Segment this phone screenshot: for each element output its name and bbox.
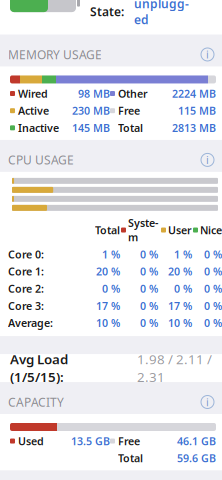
staticText: 230 MB — [72, 104, 110, 118]
staticText: 115 MB — [178, 104, 216, 118]
staticText: 20 % — [96, 264, 120, 279]
staticText: 0 % — [204, 247, 222, 261]
staticText: unplugged — [134, 0, 189, 27]
staticText: Active — [18, 104, 49, 118]
staticText: 0 % — [204, 299, 222, 313]
staticText: State: — [90, 4, 124, 19]
staticText: User — [168, 223, 192, 237]
staticText: 0 % — [140, 264, 158, 279]
staticText: Avg Load (1/5/15): — [10, 350, 68, 386]
staticText: Total — [118, 121, 143, 135]
staticText: Core 2: — [8, 281, 44, 296]
staticText: 145 MB — [72, 121, 110, 135]
staticText: Other — [118, 86, 148, 101]
staticText: 0 % — [140, 281, 158, 296]
staticText: 10 % — [168, 316, 192, 330]
staticText: i — [206, 153, 209, 167]
staticText: MEMORY USAGE — [8, 46, 102, 62]
staticText: 0 % — [174, 281, 192, 296]
staticText: Free — [118, 104, 140, 118]
staticText: CPU USAGE — [8, 152, 74, 168]
staticText: 46.1 GB — [177, 434, 216, 448]
staticText: Wired — [18, 86, 48, 101]
staticText: 0 % — [204, 264, 222, 279]
button[interactable]: Information — [201, 395, 214, 408]
staticText: Total — [118, 451, 143, 465]
staticText: 1 % — [102, 247, 120, 261]
staticText: 0 % — [204, 316, 222, 330]
staticText: Average: — [8, 316, 53, 330]
staticText: 98 MB — [78, 86, 110, 101]
staticText: Used — [18, 434, 44, 448]
staticText: Inactive — [18, 121, 59, 135]
staticText: 1 % — [174, 247, 192, 261]
staticText: 17 % — [168, 299, 192, 313]
staticText: System — [128, 216, 158, 244]
staticText: 1.98 / 2.11 / 2.31 — [137, 350, 212, 386]
staticText: Free — [118, 434, 140, 448]
staticText: 0 % — [204, 281, 222, 296]
staticText: Nice — [200, 223, 222, 237]
button[interactable]: Information — [201, 48, 214, 61]
staticText: i — [206, 47, 209, 62]
staticText: 17 % — [96, 299, 120, 313]
staticText: CAPACITY — [8, 394, 64, 410]
staticText: 20 % — [168, 264, 192, 279]
staticText: Total — [95, 223, 120, 237]
staticText: 0 % — [140, 316, 158, 330]
staticText: 59.6 GB — [177, 451, 216, 465]
staticText: 0 % — [140, 247, 158, 261]
staticText: 0 % — [140, 299, 158, 313]
staticText: Core 1: — [8, 264, 44, 279]
staticText: 2224 MB — [172, 86, 216, 101]
staticText: Core 3: — [8, 299, 44, 313]
staticText: 13.5 GB — [71, 434, 110, 448]
button[interactable]: Information — [201, 153, 214, 166]
staticText: Core 0: — [8, 247, 44, 261]
staticText: 0 % — [102, 281, 120, 296]
staticText: 2813 MB — [172, 121, 216, 135]
staticText: i — [206, 395, 209, 409]
staticText: 10 % — [96, 316, 120, 330]
